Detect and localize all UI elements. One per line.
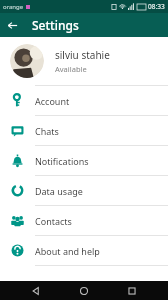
staticText: 08:33	[148, 2, 165, 11]
button[interactable]: Back	[0, 13, 24, 37]
button[interactable]: Contacts	[0, 206, 168, 235]
button[interactable]: Home	[72, 281, 96, 300]
staticText: Account	[35, 95, 70, 107]
staticText: orange	[3, 3, 24, 11]
staticText: Settings	[32, 17, 79, 33]
button[interactable]: Account	[0, 86, 168, 115]
staticText: silviu stahie	[55, 48, 110, 62]
button[interactable]: Chats	[0, 116, 168, 145]
staticText: Contacts	[35, 215, 72, 227]
button[interactable]: About and help	[0, 236, 168, 265]
button[interactable]: Recents	[120, 281, 144, 300]
staticText: Chats	[35, 125, 59, 137]
staticText: Data usage	[35, 185, 83, 197]
staticText: Notifications	[35, 155, 89, 167]
button[interactable]: Back	[24, 281, 48, 300]
staticText: About and help	[35, 245, 100, 257]
button[interactable]: Notifications	[0, 146, 168, 175]
staticText: Available	[55, 64, 87, 74]
button[interactable]: silviu stahie	[0, 37, 168, 85]
button[interactable]: Data usage	[0, 176, 168, 205]
